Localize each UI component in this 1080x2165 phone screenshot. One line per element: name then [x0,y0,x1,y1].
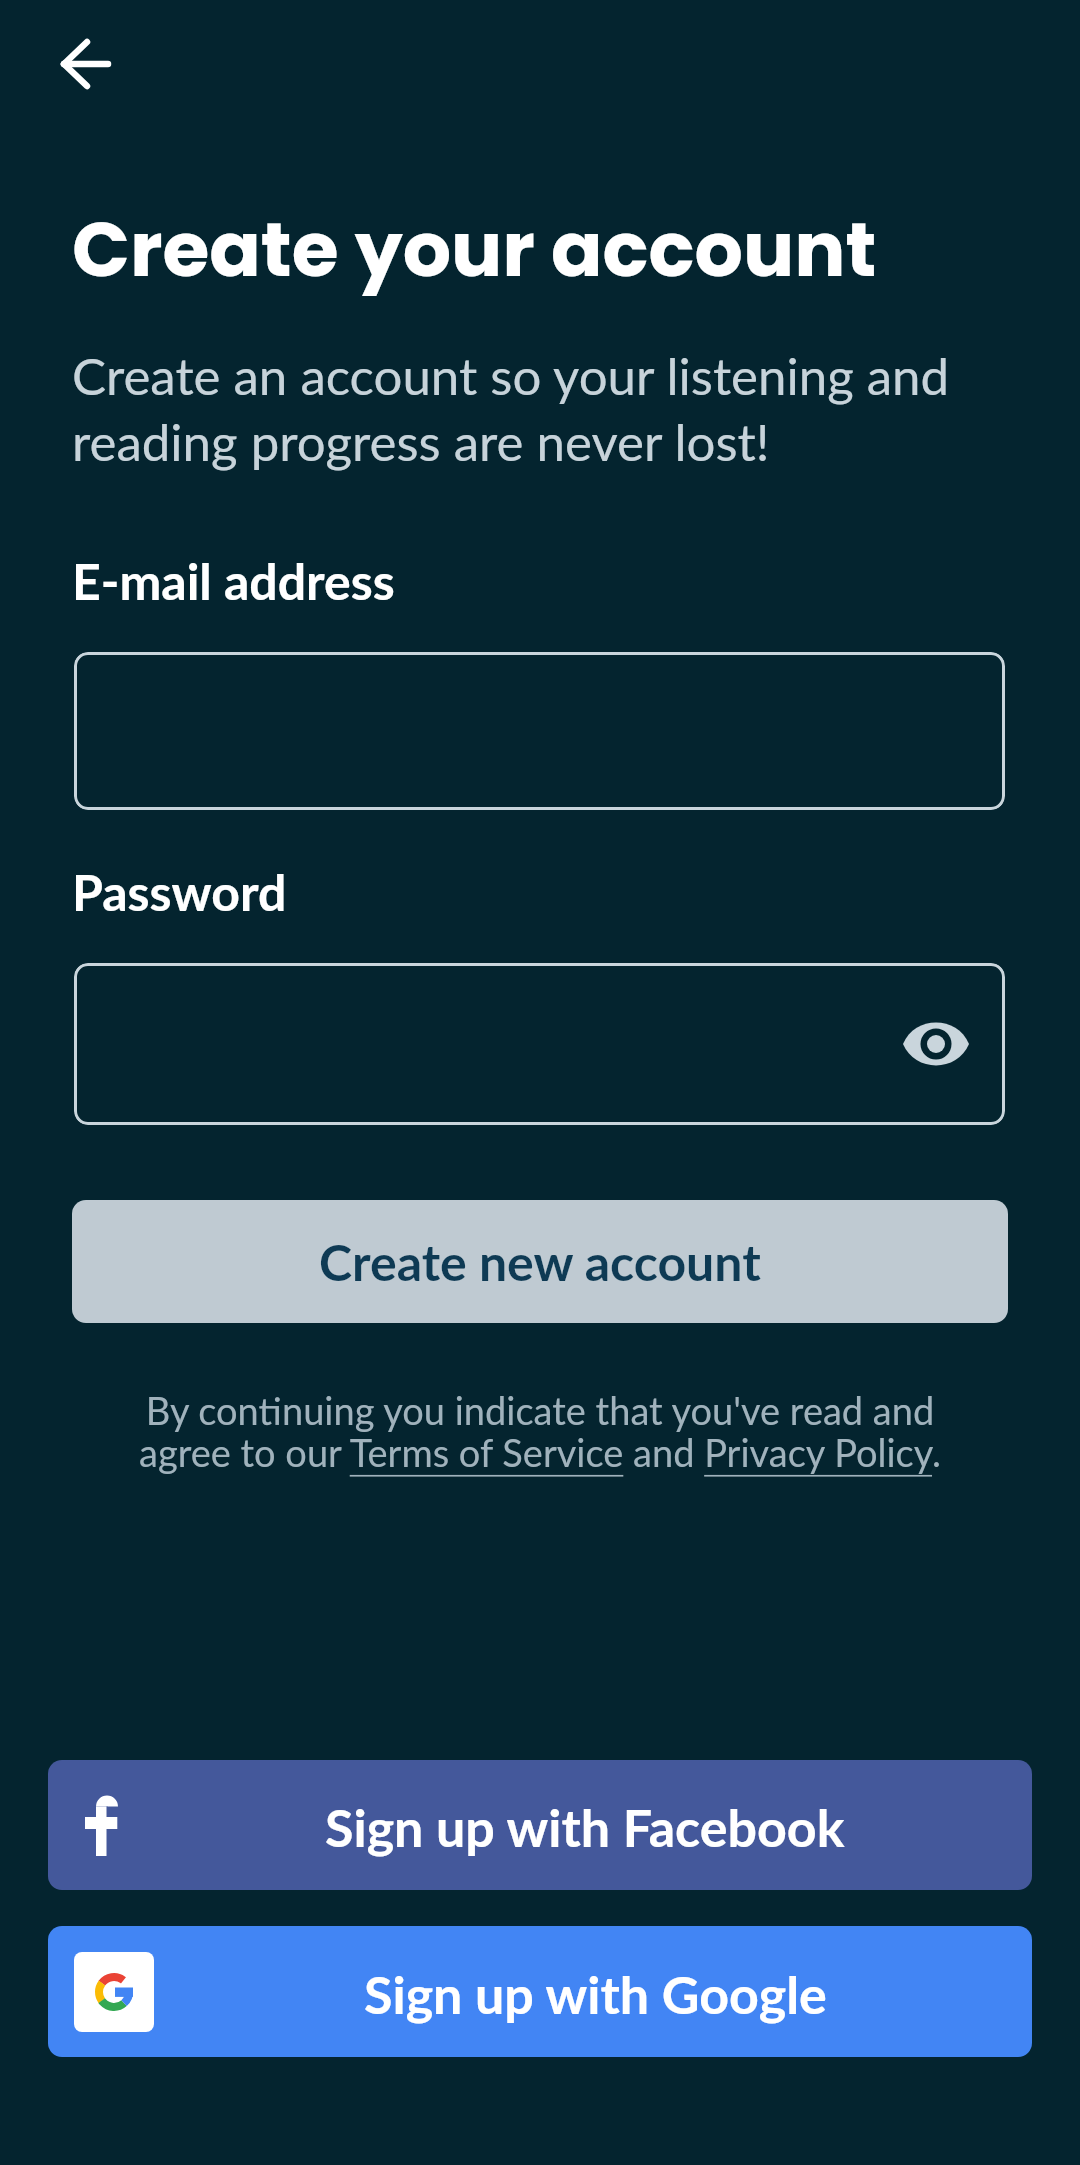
button[interactable]: Create new account [72,1200,1008,1323]
staticText: By continuing you indicate that you've r… [139,1387,941,1475]
button[interactable] [74,963,1005,1125]
button[interactable]: By continuing you indicate that you've r… [20,1387,1060,1475]
staticText: Password [72,862,287,922]
staticText: Create new account [319,1232,761,1292]
staticText: Create your account [72,196,877,302]
button[interactable] [48,26,124,102]
button[interactable] [74,652,1005,810]
staticText: Sign up with Facebook [325,1796,845,1858]
button[interactable]: Sign up with Google [48,1926,1032,2057]
staticText: Create an account so your listening and … [72,345,950,472]
staticText: Sign up with Google [364,1963,827,2025]
staticText: E-mail address [72,551,395,611]
button[interactable] [903,1019,969,1069]
button[interactable]: Sign up with Facebook [48,1760,1032,1890]
